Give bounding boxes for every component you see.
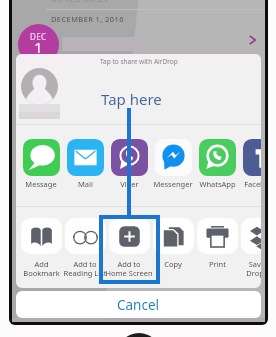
staticText: Add to Home Screen [105, 259, 153, 278]
button[interactable]: Add to Home Screen [103, 218, 155, 278]
button[interactable]: Facebook [239, 139, 261, 189]
button[interactable]: Add Bookmark [16, 218, 67, 278]
staticText: NO RESPONSES [51, 0, 109, 5]
staticText: 1 [34, 37, 43, 57]
staticText: Viber [120, 179, 139, 189]
staticText: Add to Reading List [63, 259, 107, 278]
staticText: Cancel [117, 296, 160, 314]
button[interactable]: Messenger [151, 139, 195, 189]
button[interactable]: Print [191, 218, 243, 269]
staticText: WhatsApp [199, 179, 236, 189]
staticText: Save to Dropbox [246, 259, 261, 278]
button[interactable]: Add to Reading List [59, 218, 111, 278]
staticText: Message [25, 179, 57, 189]
staticText: Mail [78, 179, 93, 189]
other: Home [117, 333, 161, 337]
button[interactable]: Copy [147, 218, 199, 269]
button[interactable]: Viber [107, 139, 151, 189]
staticText: Tap to share with AirDrop [100, 57, 178, 66]
button[interactable]: Next [244, 32, 260, 48]
staticText: Messenger [153, 179, 193, 189]
staticText: Facebook [244, 179, 261, 189]
staticText: DECEMBER 1, 2016 [51, 14, 124, 24]
button[interactable]: WhatsApp [195, 139, 239, 189]
button[interactable]: Mail [63, 139, 107, 189]
staticText: Print [209, 259, 226, 269]
staticText: Add Bookmark [23, 259, 60, 278]
button[interactable]: Save to Dropbox [235, 218, 261, 278]
staticText: Tap here [101, 89, 162, 109]
button[interactable]: Message [19, 139, 63, 189]
button[interactable]: Cancel [16, 291, 261, 318]
button[interactable]: AirDrop contact [19, 68, 63, 124]
staticText: DEC [30, 31, 47, 42]
button[interactable]: December 1 [18, 24, 59, 65]
staticText: Copy [164, 259, 182, 269]
